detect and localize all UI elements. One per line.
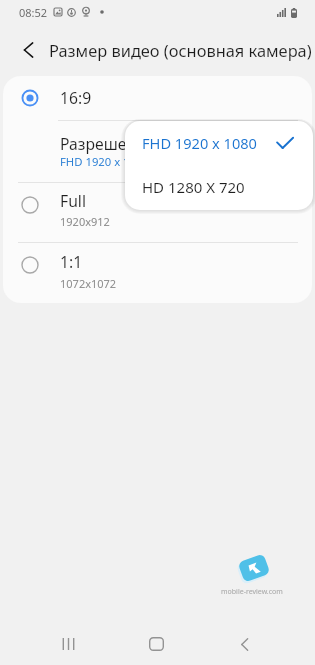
button[interactable]: Full [3,183,312,243]
button[interactable]: HD 1280 X 720 [125,166,313,210]
staticText: Full [60,190,86,211]
button[interactable]: Back [14,36,42,64]
staticText: mobile-review.com [221,587,283,597]
button[interactable]: Back [224,624,264,664]
staticText: 1920x912 [60,214,110,229]
staticText: Размер видео (основная камера) [49,39,312,61]
staticText: 1072x1072 [60,276,117,291]
staticText: 1:1 [60,251,83,272]
staticText: Разрешение [60,133,155,154]
staticText: 16:9 [60,87,92,108]
staticText: HD 1280 X 720 [142,177,245,197]
button[interactable]: Разрешение [3,121,312,182]
staticText: FHD 1920 x 1080 [142,133,257,153]
staticText: 08:52 [19,5,48,20]
button[interactable]: 1:1 [3,243,312,303]
button[interactable]: FHD 1920 x 1080 [125,121,313,166]
button[interactable]: Home [136,624,176,664]
button[interactable]: 16:9 [3,76,312,120]
button[interactable]: Recent apps [48,624,88,664]
staticText: FHD 1920 x 1080 [60,154,149,169]
